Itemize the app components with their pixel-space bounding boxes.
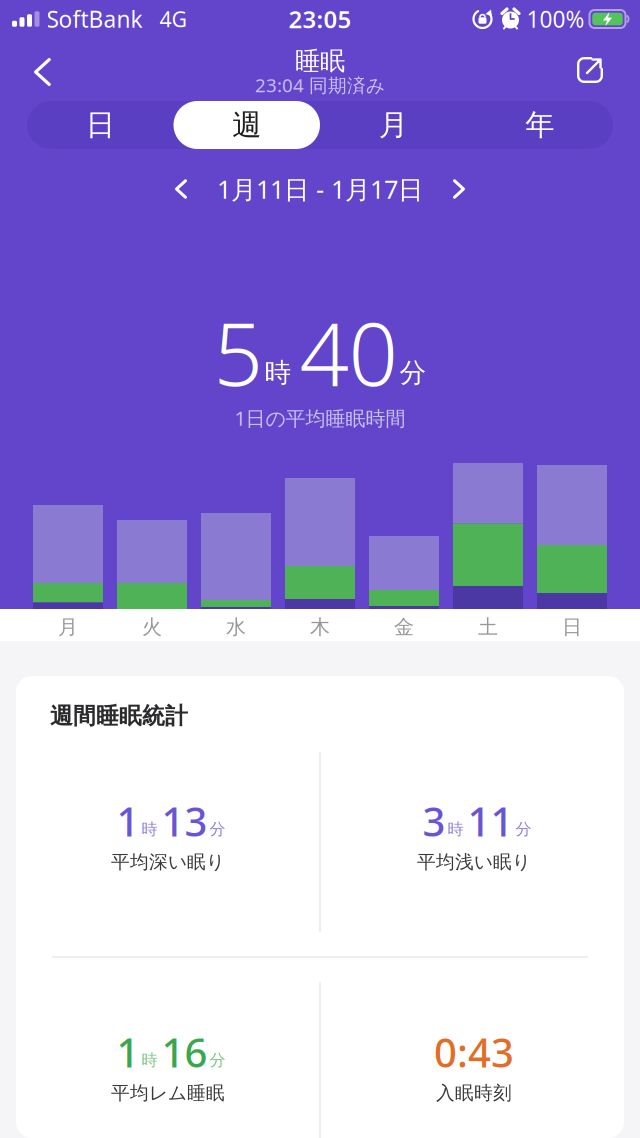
staticText: 分 xyxy=(515,819,531,839)
staticText: 3 xyxy=(422,794,445,847)
button[interactable]: 年 xyxy=(466,101,613,149)
staticText: 1 xyxy=(116,794,139,847)
staticText: 月 xyxy=(58,615,78,639)
staticText: 1日の平均睡眠時間 xyxy=(234,405,405,431)
staticText: 1 xyxy=(116,1025,139,1078)
staticText: 分 xyxy=(399,356,426,389)
staticText: 週 xyxy=(232,107,261,143)
staticText: 木 xyxy=(310,615,330,639)
button[interactable]: Back xyxy=(0,56,51,84)
staticText: 16 xyxy=(161,1025,207,1078)
button[interactable]: Share xyxy=(577,57,640,83)
staticText: 水 xyxy=(226,615,246,639)
staticText: 時 xyxy=(264,356,291,389)
staticText: 23:04 同期済み xyxy=(255,73,385,97)
staticText: 時 xyxy=(141,819,157,839)
staticText: 年 xyxy=(525,107,554,143)
staticText: 金 xyxy=(394,615,414,639)
staticText: 4G xyxy=(159,5,187,33)
button[interactable]: 月 xyxy=(320,101,466,149)
staticText: 平均浅い眠り xyxy=(417,850,531,873)
staticText: 日 xyxy=(86,107,115,143)
staticText: 11 xyxy=(467,794,513,847)
staticText: 時 xyxy=(447,819,463,839)
staticText: 時 xyxy=(141,1050,157,1070)
staticText: 23:05 xyxy=(288,3,351,35)
button[interactable]: 日 xyxy=(27,101,173,149)
staticText: 睡眠 xyxy=(295,45,345,76)
staticText: 土 xyxy=(478,615,498,639)
staticText: 平均レム睡眠 xyxy=(111,1081,225,1104)
button[interactable]: Next week xyxy=(441,179,477,199)
staticText: 5 xyxy=(213,294,262,410)
staticText: 40 xyxy=(299,294,397,410)
staticText: 月 xyxy=(379,107,408,143)
button[interactable]: Previous week xyxy=(163,179,199,199)
staticText: 100% xyxy=(526,4,584,34)
staticText: 13 xyxy=(161,794,207,847)
button[interactable]: 週 xyxy=(173,101,320,149)
staticText: 入眠時刻 xyxy=(436,1081,512,1104)
staticText: SoftBank xyxy=(46,4,142,34)
staticText: 週間睡眠統計 xyxy=(50,702,188,730)
staticText: 平均深い眠り xyxy=(111,850,225,873)
staticText: 分 xyxy=(209,1050,225,1070)
staticText: 分 xyxy=(209,819,225,839)
staticText: 0:43 xyxy=(434,1025,514,1078)
staticText: 1月11日 - 1月17日 xyxy=(217,172,423,206)
staticText: 日 xyxy=(562,615,582,639)
staticText: 火 xyxy=(142,615,162,639)
